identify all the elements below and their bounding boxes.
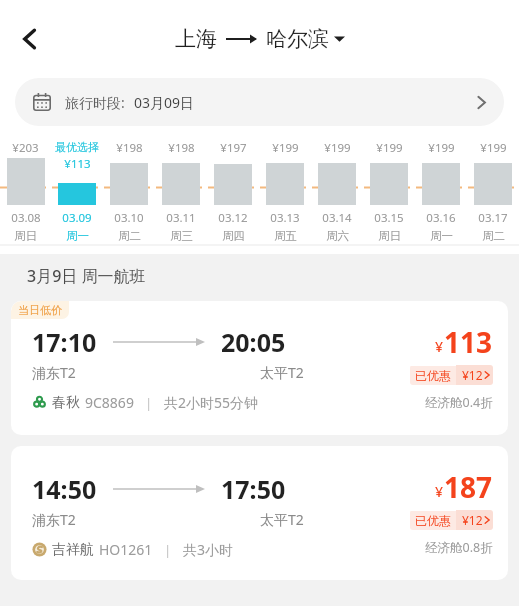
- staticText: 03.10: [114, 210, 144, 226]
- staticText: 9C8869: [85, 393, 134, 412]
- staticText: 周日: [378, 229, 401, 243]
- staticText: 吉祥航: [52, 541, 94, 559]
- staticText: 共2小时55分钟: [164, 393, 259, 412]
- button[interactable]: 已优惠: [410, 510, 493, 530]
- staticText: 浦东T2: [32, 510, 76, 529]
- button[interactable]: ¥199: [259, 140, 311, 245]
- button[interactable]: 上海: [175, 26, 345, 52]
- button[interactable]: ¥198: [103, 140, 155, 245]
- staticText: 14:50: [32, 472, 97, 506]
- staticText: 周一: [66, 229, 89, 243]
- staticText: 113: [444, 323, 493, 361]
- staticText: 浦东T2: [32, 363, 76, 382]
- button[interactable]: ¥199: [363, 140, 415, 245]
- button[interactable]: ¥198: [155, 140, 207, 245]
- staticText: 周三: [170, 229, 193, 243]
- staticText: 经济舱0.8折: [425, 539, 493, 556]
- staticText: ¥197: [220, 140, 247, 156]
- staticText: 周六: [326, 229, 349, 243]
- staticText: ¥: [435, 482, 444, 501]
- staticText: ¥199: [376, 140, 403, 156]
- staticText: 经济舱0.4折: [425, 394, 493, 411]
- staticText: 03.12: [218, 210, 248, 226]
- staticText: ¥12: [462, 367, 483, 383]
- button[interactable]: ¥197: [207, 140, 259, 245]
- staticText: ¥199: [428, 140, 455, 156]
- staticText: 03.17: [478, 210, 508, 226]
- staticText: 03月09日: [134, 93, 195, 112]
- button[interactable]: ¥199: [311, 140, 363, 245]
- button[interactable]: ¥199: [415, 140, 467, 245]
- staticText: 周四: [222, 229, 245, 243]
- button[interactable]: 当日低价: [11, 301, 508, 435]
- staticText: 旅行时段:: [65, 93, 125, 112]
- staticText: 周二: [118, 229, 141, 243]
- staticText: ¥203: [12, 140, 39, 156]
- staticText: 已优惠: [415, 513, 451, 528]
- button[interactable]: 旅行时段:: [15, 78, 504, 126]
- staticText: ¥: [435, 337, 444, 356]
- staticText: 03.14: [322, 210, 352, 226]
- staticText: |: [145, 394, 153, 412]
- staticText: 上海: [175, 26, 217, 52]
- staticText: 20:05: [221, 325, 286, 359]
- button[interactable]: 已优惠: [410, 365, 493, 385]
- button[interactable]: ¥199: [467, 140, 519, 245]
- button[interactable]: ¥203: [0, 140, 51, 245]
- staticText: 周五: [274, 229, 297, 243]
- staticText: 17:10: [32, 325, 97, 359]
- staticText: 太平T2: [260, 510, 304, 529]
- staticText: 最优选择: [55, 140, 99, 154]
- staticText: ¥199: [272, 140, 299, 156]
- staticText: 当日低价: [18, 303, 62, 317]
- button[interactable]: Back: [6, 15, 54, 63]
- staticText: ¥12: [462, 512, 483, 528]
- staticText: 周日: [14, 229, 37, 243]
- staticText: 187: [444, 468, 493, 506]
- button[interactable]: 最优选择: [51, 140, 103, 245]
- staticText: HO1261: [99, 540, 153, 559]
- staticText: 哈尔滨: [266, 26, 329, 52]
- staticText: 03.13: [270, 210, 300, 226]
- staticText: 已优惠: [415, 368, 451, 383]
- staticText: 03.16: [426, 210, 456, 226]
- staticText: 3月9日 周一航班: [27, 265, 146, 287]
- staticText: ¥113: [64, 156, 91, 172]
- staticText: 太平T2: [260, 363, 304, 382]
- staticText: 周二: [482, 229, 505, 243]
- staticText: 共3小时: [183, 540, 234, 559]
- staticText: |: [164, 541, 172, 559]
- staticText: 03.08: [11, 210, 41, 226]
- staticText: 03.09: [62, 210, 92, 226]
- staticText: 周一: [430, 229, 453, 243]
- staticText: 17:50: [221, 472, 286, 506]
- staticText: ¥199: [324, 140, 351, 156]
- button[interactable]: 14:50: [11, 446, 508, 580]
- staticText: ¥198: [116, 140, 143, 156]
- staticText: 03.11: [166, 210, 196, 226]
- staticText: ¥199: [480, 140, 507, 156]
- staticText: 春秋: [52, 394, 80, 412]
- staticText: ¥198: [168, 140, 195, 156]
- staticText: 03.15: [374, 210, 404, 226]
